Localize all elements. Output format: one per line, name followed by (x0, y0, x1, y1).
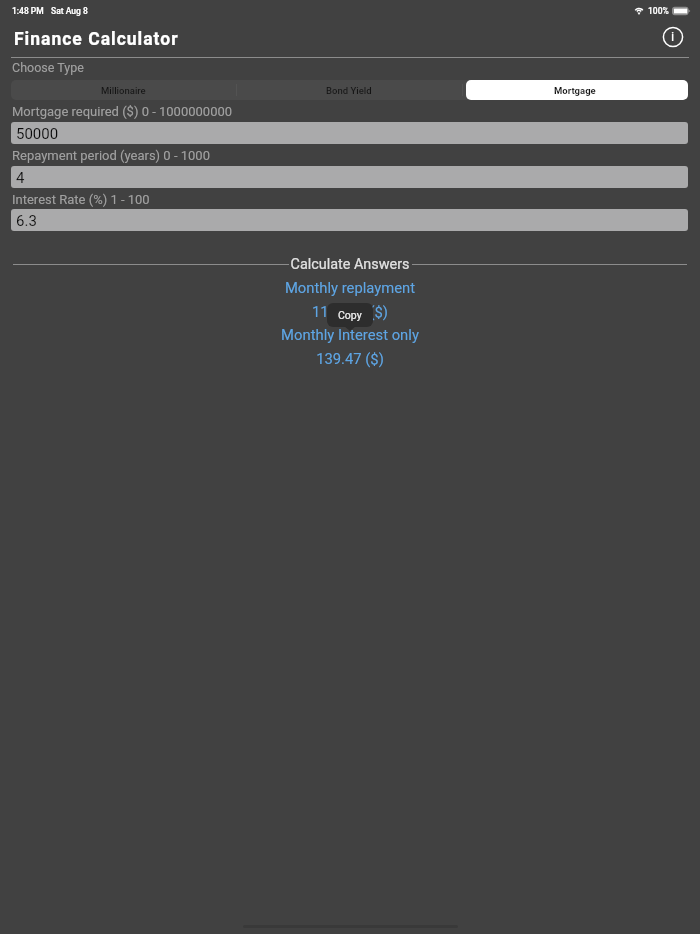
staticText: Finance Calculator (14, 29, 179, 50)
staticText: 100% (648, 6, 669, 16)
staticText: i (671, 29, 675, 44)
staticText: Copy (338, 309, 362, 321)
staticText: Mortgage required ($) 0 - 1000000000 (12, 104, 233, 119)
button[interactable]: Bond Yield (236, 80, 462, 100)
staticText: 4 (16, 169, 25, 187)
staticText: 1181.14 ($) (0, 303, 700, 320)
staticText: Monthly Interest only (0, 326, 700, 343)
staticText: Sat Aug 8 (51, 6, 88, 16)
button[interactable]: Mortgage (462, 80, 688, 100)
staticText: 1:48 PM (12, 6, 44, 16)
staticText: 6.3 (16, 212, 37, 230)
staticText: 139.47 ($) (0, 350, 700, 367)
staticText: Calculate Answers (0, 256, 700, 273)
staticText: Repayment period (years) 0 - 1000 (12, 148, 210, 163)
button[interactable]: Copy (327, 303, 373, 327)
staticText: Interest Rate (%) 1 - 100 (12, 192, 150, 207)
staticText: Bond Yield (326, 85, 372, 96)
staticText: 50000 (16, 125, 59, 143)
staticText: Choose Type (12, 60, 84, 75)
button[interactable]: Millionaire (11, 80, 236, 100)
staticText: Mortgage (554, 85, 596, 96)
button[interactable]: Info (662, 26, 684, 48)
staticText: Monthly replayment (0, 279, 700, 296)
staticText: Millionaire (101, 85, 146, 96)
